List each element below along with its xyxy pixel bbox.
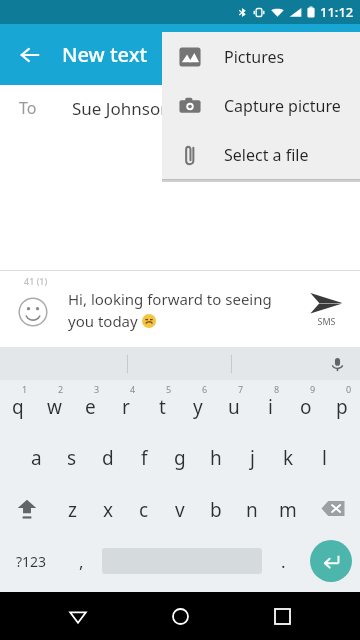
- staticText: Hi, looking forward to seeing: [68, 289, 272, 309]
- staticText: you today: [68, 311, 142, 331]
- button[interactable]: c: [126, 482, 162, 534]
- staticText: r: [122, 394, 130, 420]
- button[interactable]: a: [18, 430, 54, 482]
- staticText: 6: [202, 383, 208, 395]
- button[interactable]: Backspace: [306, 482, 360, 534]
- button[interactable]: q: [0, 380, 36, 430]
- staticText: o: [300, 394, 312, 420]
- button[interactable]: Home: [160, 596, 200, 636]
- staticText: d: [102, 445, 114, 471]
- button[interactable]: Select a file: [162, 130, 360, 179]
- button[interactable]: e: [72, 380, 108, 430]
- staticText: 8: [274, 383, 280, 395]
- button[interactable]: Voice input: [324, 351, 350, 377]
- staticText: New text: [62, 41, 148, 68]
- button[interactable]: Back: [8, 33, 52, 77]
- button[interactable]: o: [288, 380, 324, 430]
- staticText: q: [12, 394, 24, 420]
- button[interactable]: w: [36, 380, 72, 430]
- staticText: b: [210, 497, 222, 523]
- button[interactable]: s: [54, 430, 90, 482]
- staticText: z: [68, 497, 77, 523]
- button[interactable]: l: [306, 430, 342, 482]
- staticText: 1: [22, 383, 28, 395]
- button[interactable]: .: [264, 534, 302, 588]
- staticText: a: [31, 445, 42, 471]
- button[interactable]: z: [54, 482, 90, 534]
- button[interactable]: Back: [58, 596, 98, 636]
- staticText: 4: [130, 383, 136, 395]
- button[interactable]: y: [180, 380, 216, 430]
- button[interactable]: u: [216, 380, 252, 430]
- button[interactable]: Pictures: [162, 32, 360, 81]
- staticText: h: [210, 445, 222, 471]
- staticText: k: [283, 445, 294, 471]
- button[interactable]: i: [252, 380, 288, 430]
- button[interactable]: Capture picture: [162, 81, 360, 130]
- staticText: SMS: [317, 315, 336, 327]
- staticText: j: [250, 445, 255, 471]
- button[interactable]: Recent apps: [262, 596, 302, 636]
- staticText: m: [279, 497, 297, 523]
- button[interactable]: h: [198, 430, 234, 482]
- staticText: 41 (1): [24, 275, 48, 287]
- staticText: 11:12: [320, 3, 354, 21]
- staticText: ?123: [16, 552, 47, 571]
- staticText: 9: [310, 383, 316, 395]
- button[interactable]: d: [90, 430, 126, 482]
- staticText: n: [246, 497, 258, 523]
- staticText: g: [174, 445, 186, 471]
- staticText: y: [193, 394, 203, 420]
- button[interactable]: ?123: [0, 534, 62, 588]
- staticText: 3: [94, 383, 100, 395]
- staticText: To: [19, 97, 37, 119]
- staticText: u: [228, 394, 240, 420]
- button[interactable]: k: [270, 430, 306, 482]
- button[interactable]: t: [144, 380, 180, 430]
- staticText: 2: [58, 383, 64, 395]
- button[interactable]: Send SMS: [300, 291, 352, 327]
- staticText: x: [103, 497, 114, 523]
- staticText: .: [281, 550, 286, 573]
- staticText: 5: [166, 383, 172, 395]
- staticText: 0: [346, 383, 352, 395]
- staticText: Pictures: [224, 46, 285, 68]
- button[interactable]: v: [162, 482, 198, 534]
- staticText: p: [336, 394, 348, 420]
- button[interactable]: f: [126, 430, 162, 482]
- staticText: Capture picture: [224, 95, 341, 117]
- button[interactable]: r: [108, 380, 144, 430]
- button[interactable]: b: [198, 482, 234, 534]
- button[interactable]: Shift: [0, 482, 54, 534]
- button[interactable]: j: [234, 430, 270, 482]
- staticText: c: [139, 497, 149, 523]
- staticText: w: [47, 394, 62, 420]
- staticText: t: [159, 394, 166, 420]
- staticText: Sue Johnson: [72, 97, 171, 120]
- staticText: ,: [79, 550, 84, 573]
- staticText: 7: [238, 383, 244, 395]
- button[interactable]: ,: [62, 534, 100, 588]
- staticText: v: [175, 497, 185, 523]
- staticText: Select a file: [224, 144, 309, 166]
- button[interactable]: p: [324, 380, 360, 430]
- staticText: s: [67, 445, 77, 471]
- button[interactable]: Emoji: [14, 293, 52, 331]
- staticText: i: [268, 394, 273, 420]
- staticText: l: [322, 445, 327, 471]
- button[interactable]: x: [90, 482, 126, 534]
- button[interactable]: Enter: [310, 540, 352, 582]
- button[interactable]: n: [234, 482, 270, 534]
- staticText: e: [85, 394, 96, 420]
- button[interactable]: m: [270, 482, 306, 534]
- staticText: f: [141, 445, 148, 471]
- button[interactable]: g: [162, 430, 198, 482]
